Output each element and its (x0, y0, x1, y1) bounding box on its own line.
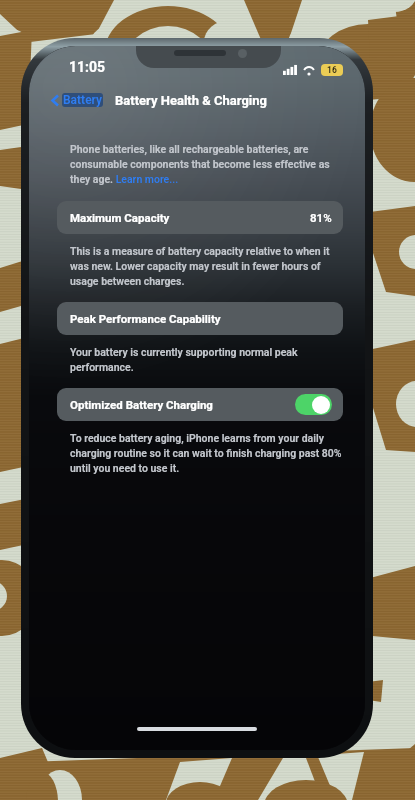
staticText: Battery (63, 93, 102, 107)
button[interactable]: Optimized Battery Charging (57, 388, 343, 421)
staticText: Peak Performance Capability (70, 312, 221, 325)
button[interactable]: Maximum Capacity (57, 201, 343, 234)
button[interactable]: Optimized Battery Charging, on (295, 394, 332, 415)
staticText: This is a measure of battery capacity re… (70, 245, 343, 287)
staticText: Battery Health & Charging (115, 93, 267, 108)
staticText: Phone batteries, like all rechargeable b… (70, 143, 343, 185)
staticText: Maximum Capacity (70, 211, 170, 224)
staticText: 16 (327, 65, 337, 75)
other: Wi-Fi (303, 65, 315, 75)
other: Cellular signal (283, 65, 297, 75)
staticText: Your battery is currently supporting nor… (70, 346, 343, 373)
staticText: Optimized Battery Charging (70, 398, 213, 411)
button[interactable]: Battery (49, 93, 105, 107)
other: Battery 16 percent (321, 64, 343, 76)
button[interactable]: Peak Performance Capability (57, 302, 343, 335)
staticText: 81% (310, 211, 332, 224)
staticText: 11:05 (69, 59, 106, 75)
staticText: To reduce battery aging, iPhone learns f… (70, 432, 343, 474)
